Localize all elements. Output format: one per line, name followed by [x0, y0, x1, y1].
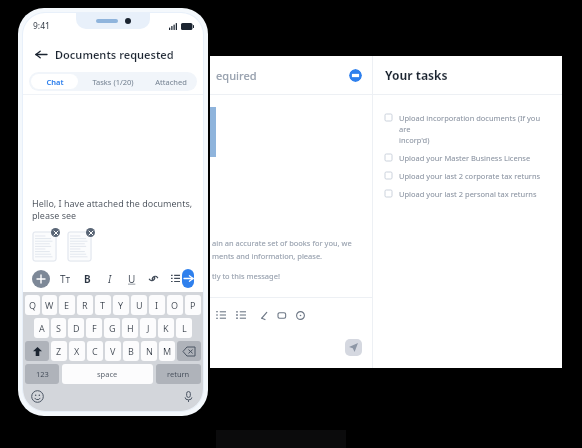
staticText: Upload incorporation documents (If you a…	[399, 113, 550, 145]
staticText: T	[100, 299, 106, 311]
button[interactable]: Backspace	[177, 341, 201, 361]
button[interactable]: Emoji	[31, 390, 44, 403]
button[interactable]: K	[158, 318, 174, 338]
button[interactable]: Chat	[31, 74, 78, 89]
button[interactable]: 123	[25, 364, 59, 384]
button[interactable]	[32, 231, 57, 262]
button[interactable]: Q	[25, 295, 40, 315]
button[interactable]: Z	[51, 341, 67, 361]
button[interactable]: Upload your last 2 corporate tax returns	[385, 171, 550, 181]
staticText: B	[128, 345, 134, 357]
staticText: I	[155, 299, 159, 311]
staticText: Q	[29, 299, 37, 311]
button[interactable]: video	[276, 309, 289, 322]
staticText: Hello, I have attached the documents, pl…	[32, 197, 194, 222]
button[interactable]: emoji	[294, 309, 307, 322]
staticText: I	[108, 272, 112, 285]
button[interactable]: A	[34, 318, 49, 338]
staticText: ain an accurate set of books for you, we	[212, 238, 352, 248]
staticText: L	[182, 322, 187, 334]
button[interactable]: J	[140, 318, 156, 338]
staticText: K	[163, 322, 169, 334]
button[interactable]: space	[62, 364, 153, 384]
staticText: E	[64, 299, 70, 311]
button[interactable]: V	[105, 341, 121, 361]
button[interactable]: L	[176, 318, 192, 338]
button[interactable]: Remove attachment	[51, 228, 60, 237]
staticText: U	[128, 272, 136, 285]
button[interactable]: W	[42, 295, 57, 315]
button[interactable]: return	[156, 364, 201, 384]
button[interactable]: clip	[258, 309, 271, 322]
button[interactable]: U	[131, 295, 147, 315]
other: Backspace	[183, 347, 195, 356]
other: Shift	[33, 347, 42, 356]
button[interactable]: Upload your last 2 personal tax returns	[385, 189, 550, 199]
button[interactable]: E	[59, 295, 75, 315]
button[interactable]: X	[69, 341, 85, 361]
button[interactable]: Send	[345, 339, 362, 356]
button[interactable]: C	[87, 341, 103, 361]
staticText: Z	[56, 345, 62, 357]
button[interactable]: Remove attachment	[86, 228, 95, 237]
staticText: Tт	[60, 272, 71, 285]
button[interactable]: F	[86, 318, 102, 338]
button[interactable]: Tasks (1/20)	[82, 74, 143, 89]
staticText: U	[136, 299, 143, 311]
staticText: X	[74, 345, 80, 357]
button[interactable]: D	[68, 318, 84, 338]
button[interactable]: M	[159, 341, 175, 361]
staticText: D	[73, 322, 80, 334]
staticText: space	[97, 369, 118, 379]
button[interactable]: O	[167, 295, 183, 315]
button[interactable]: B	[123, 341, 139, 361]
button[interactable]: Send	[182, 269, 194, 288]
staticText: B	[84, 272, 91, 285]
button[interactable]: Bulleted list	[234, 308, 248, 322]
button[interactable]: G	[104, 318, 120, 338]
staticText: 123	[36, 369, 49, 379]
button[interactable]: List	[169, 272, 182, 285]
staticText: A	[39, 322, 45, 334]
staticText: Chat	[46, 77, 64, 87]
staticText: W	[45, 299, 54, 311]
button[interactable]	[67, 231, 92, 262]
staticText: Upload your Master Business License	[399, 153, 531, 163]
button[interactable]: Upload your Master Business License	[385, 153, 550, 163]
button[interactable]: Back	[32, 45, 50, 63]
button[interactable]: Dictate	[182, 390, 195, 403]
staticText: C	[92, 345, 98, 357]
button[interactable]: U	[125, 272, 138, 285]
button[interactable]: I	[103, 272, 116, 285]
button[interactable]: N	[141, 341, 157, 361]
button[interactable]: P	[185, 295, 201, 315]
button[interactable]: Shift	[25, 341, 49, 361]
button[interactable]: Upload incorporation documents (If you a…	[385, 113, 550, 145]
button[interactable]: Print	[349, 69, 362, 82]
staticText: H	[127, 322, 134, 334]
button[interactable]: Link	[147, 272, 160, 285]
staticText: Upload your last 2 personal tax returns	[399, 189, 537, 199]
button[interactable]: Add attachment	[32, 270, 50, 288]
button[interactable]: B	[81, 272, 94, 285]
staticText: Your tasks	[385, 67, 448, 83]
staticText: Upload your last 2 corporate tax returns	[399, 171, 541, 181]
staticText: S	[56, 322, 61, 334]
button[interactable]: Y	[113, 295, 129, 315]
button[interactable]: Attached	[147, 74, 195, 89]
staticText: Tasks (1/20)	[92, 77, 134, 87]
button[interactable]: R	[77, 295, 93, 315]
staticText: M	[163, 345, 172, 357]
button[interactable]: Tт	[59, 272, 72, 285]
staticText: Y	[118, 299, 124, 311]
staticText: Documents requested	[55, 47, 174, 62]
staticText: R	[82, 299, 88, 311]
button[interactable]: I	[149, 295, 165, 315]
staticText: V	[110, 345, 116, 357]
button[interactable]: S	[51, 318, 66, 338]
button[interactable]: Numbered list	[214, 308, 228, 322]
button[interactable]: H	[122, 318, 138, 338]
staticText: return	[167, 369, 190, 379]
staticText: J	[147, 322, 150, 334]
button[interactable]: T	[95, 295, 111, 315]
